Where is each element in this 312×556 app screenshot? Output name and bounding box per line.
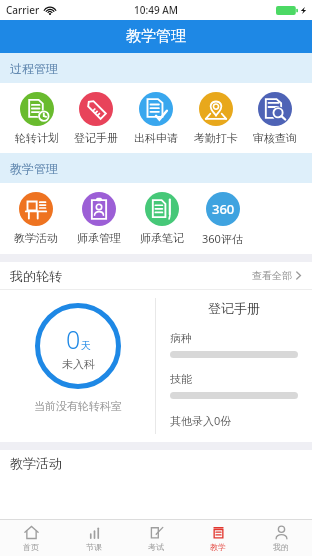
- staticText: 登记手册: [170, 300, 298, 316]
- staticText: 360: [212, 200, 235, 218]
- button[interactable]: 审核查询: [252, 92, 298, 145]
- button[interactable]: 考试: [125, 520, 187, 556]
- staticText: Carrier: [6, 3, 40, 17]
- staticText: 教学活动: [14, 231, 58, 245]
- button[interactable]: 轮转计划: [14, 92, 60, 145]
- staticText: 教学管理: [10, 161, 58, 176]
- staticText: 病种: [170, 331, 192, 345]
- staticText: 未入科: [62, 357, 95, 371]
- staticText: 我的: [273, 542, 289, 552]
- staticText: 教学管理: [126, 27, 186, 46]
- staticText: 师承管理: [77, 231, 121, 245]
- button[interactable]: 360: [202, 192, 243, 246]
- staticText: 轮转计划: [15, 131, 59, 145]
- staticText: 查看全部: [252, 269, 292, 282]
- staticText: 教学: [210, 542, 226, 552]
- staticText: 其他录入0份: [170, 413, 232, 428]
- button[interactable]: 教学: [187, 520, 249, 556]
- staticText: 天: [81, 339, 91, 352]
- staticText: 首页: [23, 542, 39, 552]
- staticText: 师承笔记: [140, 231, 184, 245]
- staticText: 10:49 AM: [134, 3, 178, 17]
- staticText: 技能: [170, 372, 192, 386]
- staticText: 节课: [86, 542, 102, 552]
- staticText: 登记手册: [74, 131, 118, 145]
- button[interactable]: 师承笔记: [139, 192, 185, 245]
- staticText: 审核查询: [253, 131, 297, 145]
- button[interactable]: 节课: [63, 520, 125, 556]
- button[interactable]: 教学活动: [13, 192, 59, 245]
- staticText: 360评估: [202, 231, 243, 246]
- staticText: 出科申请: [134, 131, 178, 145]
- button[interactable]: 出科申请: [133, 92, 179, 145]
- staticText: 我的轮转: [10, 268, 62, 284]
- button[interactable]: 教学管理: [0, 20, 312, 53]
- staticText: 考勤打卡: [194, 131, 238, 145]
- button[interactable]: 登记手册: [73, 92, 119, 145]
- button[interactable]: 首页: [0, 520, 62, 556]
- staticText: 0: [66, 322, 81, 356]
- button[interactable]: 考勤打卡: [193, 92, 239, 145]
- staticText: 考试: [148, 542, 164, 552]
- staticText: 教学活动: [10, 455, 62, 471]
- button[interactable]: 我的: [250, 520, 312, 556]
- staticText: 过程管理: [10, 61, 58, 76]
- staticText: 当前没有轮转科室: [34, 399, 122, 413]
- button[interactable]: 师承管理: [76, 192, 122, 245]
- button[interactable]: 我的轮转: [0, 262, 312, 289]
